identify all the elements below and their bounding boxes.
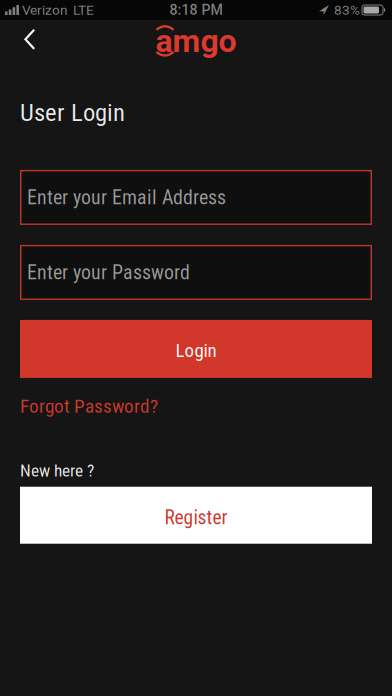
staticText: New here ? <box>20 460 94 481</box>
staticText: LTE <box>73 2 94 18</box>
button[interactable]: Enter your Email Address <box>20 170 372 225</box>
button[interactable]: Register <box>20 487 372 544</box>
staticText: Enter your Email Address <box>27 186 226 209</box>
staticText: Forgot Password? <box>20 395 158 417</box>
staticText: Enter your Password <box>27 261 190 284</box>
staticText: Register <box>164 506 227 529</box>
button[interactable]: Forgot Password? <box>20 395 158 417</box>
staticText: User Login <box>20 98 125 127</box>
button[interactable]: Enter your Password <box>20 245 372 300</box>
button[interactable]: Back <box>0 19 36 63</box>
staticText: Login <box>175 339 216 361</box>
staticText: 83% <box>334 2 360 18</box>
staticText: Verizon <box>22 2 68 18</box>
button[interactable]: Login <box>20 320 372 378</box>
staticText: amgo <box>155 22 236 60</box>
staticText: 8:18 PM <box>169 2 222 18</box>
